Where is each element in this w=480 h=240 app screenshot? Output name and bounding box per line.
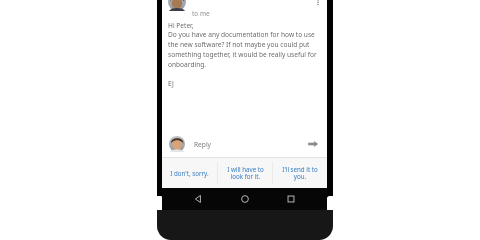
staticText: I don't, sorry. — [170, 169, 209, 177]
staticText: I'll send it to you. — [282, 165, 318, 181]
button[interactable]: More options — [310, 0, 326, 10]
staticText: Reply — [194, 140, 211, 149]
staticText: I will have to look for it. — [227, 165, 264, 181]
staticText: Do you have any documentation for how to… — [168, 30, 319, 69]
staticText: EJ — [168, 79, 174, 88]
staticText: to me — [192, 9, 210, 18]
button[interactable]: Send — [306, 137, 320, 151]
button[interactable]: I don't, sorry. — [162, 158, 217, 188]
button[interactable]: Recent apps — [280, 188, 302, 210]
button[interactable]: I will have to look for it. — [218, 158, 272, 188]
button[interactable]: Home — [234, 188, 256, 210]
button[interactable]: I'll send it to you. — [273, 158, 327, 188]
staticText: Hi Peter, — [168, 21, 194, 30]
button[interactable]: Back — [187, 188, 209, 210]
button[interactable]: Reply — [162, 131, 327, 157]
